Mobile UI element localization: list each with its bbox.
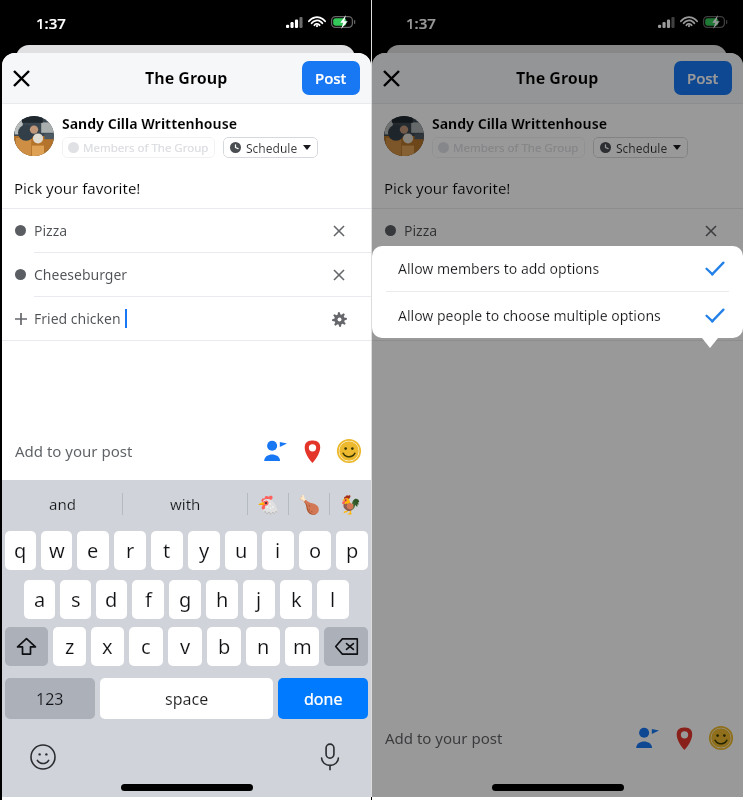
staticText: 🐔	[257, 494, 280, 515]
button[interactable]: 🐓	[330, 480, 371, 528]
staticText: Sandy Cilla Writtenhouse	[432, 114, 608, 133]
button[interactable]: Cheeseburger	[15, 253, 352, 296]
button[interactable]: Dictation	[315, 742, 345, 772]
staticText: t	[163, 537, 171, 564]
button[interactable]: s	[60, 580, 91, 619]
button[interactable]: Schedule	[593, 137, 688, 158]
button[interactable]: and	[2, 480, 122, 528]
button[interactable]: Remove option	[326, 262, 352, 288]
staticText: m	[293, 633, 312, 660]
staticText: s	[71, 586, 81, 613]
button[interactable]: 123	[5, 678, 95, 719]
button[interactable]: Tag people	[258, 434, 292, 468]
button[interactable]: Fried chicken	[15, 297, 352, 340]
button[interactable]: Post	[674, 61, 732, 95]
staticText: g	[179, 586, 192, 613]
button[interactable]: Backspace	[324, 627, 368, 666]
staticText: Cheeseburger	[404, 265, 498, 284]
button[interactable]: x	[91, 627, 124, 666]
button[interactable]: w	[41, 531, 72, 570]
button[interactable]: 🐔	[248, 480, 288, 528]
button[interactable]: t	[151, 531, 183, 570]
button[interactable]: Remove option	[698, 262, 724, 288]
button[interactable]: Pizza	[385, 209, 724, 252]
button[interactable]: m	[285, 627, 319, 666]
staticText: k	[291, 586, 302, 613]
button[interactable]: b	[207, 627, 241, 666]
button[interactable]: Shift	[5, 627, 48, 666]
button[interactable]: done	[278, 678, 368, 719]
staticText: u	[235, 537, 248, 564]
button[interactable]: v	[168, 627, 202, 666]
staticText: Add to your post	[385, 728, 503, 748]
button[interactable]: Schedule	[223, 137, 318, 158]
staticText: n	[257, 633, 270, 660]
button[interactable]: d	[96, 580, 127, 619]
staticText: o	[309, 537, 322, 564]
button[interactable]: l	[317, 580, 349, 619]
staticText: Fried chicken	[34, 309, 121, 328]
button[interactable]: Check in	[295, 434, 329, 468]
staticText: 1:37	[406, 13, 436, 33]
staticText: c	[141, 633, 151, 660]
button[interactable]: u	[225, 531, 257, 570]
button[interactable]: k	[280, 580, 312, 619]
button[interactable]: Members of The Group	[432, 137, 585, 158]
button[interactable]: p	[336, 531, 368, 570]
staticText: with	[170, 494, 201, 514]
button[interactable]: c	[129, 627, 163, 666]
button[interactable]: Members of The Group	[62, 137, 215, 158]
button[interactable]: f	[132, 580, 164, 619]
button[interactable]: Close	[372, 59, 410, 97]
button[interactable]: Check in	[667, 721, 701, 755]
button[interactable]: h	[206, 580, 238, 619]
staticText: v	[180, 633, 191, 660]
staticText: b	[218, 633, 231, 660]
staticText: Pizza	[404, 221, 438, 240]
button[interactable]: 🍗	[289, 480, 329, 528]
button[interactable]: n	[246, 627, 280, 666]
button[interactable]: Remove option	[698, 218, 724, 244]
staticText: Allow members to add options	[398, 259, 600, 278]
button[interactable]: z	[53, 627, 86, 666]
staticText: 🍗	[298, 494, 321, 515]
button[interactable]: Cheeseburger	[385, 253, 724, 296]
staticText: w	[49, 537, 65, 564]
button[interactable]: q	[5, 531, 36, 570]
button[interactable]: i	[262, 531, 294, 570]
staticText: p	[346, 537, 359, 564]
button[interactable]: Close	[2, 59, 40, 97]
button[interactable]: a	[24, 580, 55, 619]
button[interactable]: Feeling	[704, 721, 738, 755]
button[interactable]: r	[114, 531, 146, 570]
button[interactable]: Poll settings	[326, 306, 352, 332]
button[interactable]: Poll settings	[698, 306, 724, 332]
button[interactable]: Tag people	[630, 721, 664, 755]
button[interactable]: Remove option	[326, 218, 352, 244]
button[interactable]: Feeling	[332, 434, 366, 468]
staticText: Post	[315, 68, 347, 88]
button[interactable]: Allow people to choose multiple options	[398, 292, 724, 338]
button[interactable]: g	[169, 580, 201, 619]
staticText: Members of The Group	[83, 140, 209, 156]
button[interactable]: Allow members to add options	[398, 246, 724, 291]
staticText: j	[256, 586, 262, 613]
staticText: e	[87, 537, 99, 564]
button[interactable]: Post	[302, 61, 360, 95]
button[interactable]: j	[243, 580, 275, 619]
button[interactable]: y	[188, 531, 220, 570]
button[interactable]: Emoji keyboard	[30, 744, 56, 770]
button[interactable]: space	[100, 678, 273, 719]
staticText: d	[105, 586, 118, 613]
button[interactable]: Pizza	[15, 209, 352, 252]
button[interactable]: Fried chicken	[385, 297, 724, 340]
button[interactable]: with	[123, 480, 247, 528]
button[interactable]: o	[299, 531, 331, 570]
staticText: Pick your favorite!	[384, 178, 511, 198]
staticText: q	[14, 537, 27, 564]
staticText: done	[304, 688, 343, 710]
staticText: The Group	[145, 67, 228, 89]
button[interactable]: e	[77, 531, 109, 570]
staticText: Add to your post	[15, 441, 133, 461]
staticText: i	[275, 537, 281, 564]
